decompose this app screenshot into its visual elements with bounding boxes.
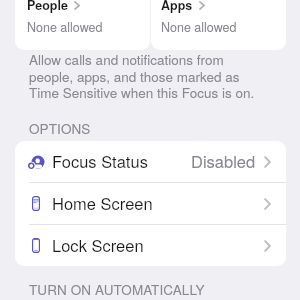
button[interactable]: Home Screen	[15, 183, 286, 224]
button[interactable]: Lock Screen	[15, 225, 286, 266]
staticText: TURN ON AUTOMATICALLY	[29, 280, 205, 299]
staticText: Allow calls and notifications from peopl…	[29, 50, 269, 102]
staticText: OPTIONS	[29, 119, 91, 138]
staticText: None allowed	[161, 18, 237, 36]
staticText: Apps	[161, 0, 193, 14]
staticText: None allowed	[27, 18, 103, 36]
staticText: Home Screen	[52, 191, 153, 215]
button[interactable]: Focus Status	[15, 141, 286, 182]
button[interactable]: Apps	[151, 0, 286, 50]
staticText: Focus Status	[52, 149, 148, 173]
staticText: Lock Screen	[52, 233, 144, 257]
button[interactable]: People	[15, 0, 150, 50]
staticText: Disabled	[191, 149, 256, 173]
staticText: People	[27, 0, 68, 14]
